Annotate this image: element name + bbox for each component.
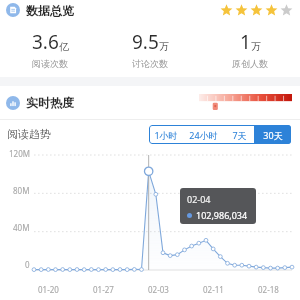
staticText: 7天 [232,129,247,141]
staticText: 万 [251,40,261,53]
button[interactable]: 9.5 [100,20,200,77]
staticText: 40M [13,222,30,233]
button[interactable]: 1小时 [149,125,183,144]
button[interactable]: 3.6 [0,20,100,77]
staticText: 02-18 [258,284,279,295]
staticText: 数据总览 [26,3,74,18]
staticText: 02-03 [148,284,169,295]
staticText: 0 [25,259,30,270]
staticText: 01-20 [38,284,59,295]
staticText: 万 [159,40,169,53]
staticText: 3.6 [32,29,59,55]
staticText: 30天 [263,129,283,141]
staticText: 亿 [59,40,69,53]
staticText: 阅读趋势 [7,127,51,141]
staticText: 原创人数 [232,58,268,69]
staticText: 120M [9,148,30,159]
staticText: 阅读次数 [32,58,68,69]
button[interactable]: 数据总览 [0,0,300,20]
button[interactable]: Rating 4 of 5 stars [220,4,293,17]
button[interactable]: 1 [200,20,300,77]
staticText: 01-27 [93,284,114,295]
staticText: 02-04 [187,193,211,205]
button[interactable]: 实时热度 [0,86,300,119]
staticText: 80M [13,185,30,196]
staticText: 讨论次数 [132,58,168,69]
staticText: 1 [240,29,251,55]
staticText: 1小时 [154,129,178,141]
staticText: 9.5 [132,29,159,55]
button[interactable]: 120M [0,148,300,300]
staticText: 24小时 [189,129,218,141]
button[interactable]: 24小时 [183,125,224,144]
button[interactable]: 30天 [254,125,291,144]
button[interactable]: 7天 [224,125,254,144]
staticText: 实时热度 [26,95,74,110]
staticText: 102,986,034 [196,209,248,221]
staticText: 02-11 [203,284,224,295]
